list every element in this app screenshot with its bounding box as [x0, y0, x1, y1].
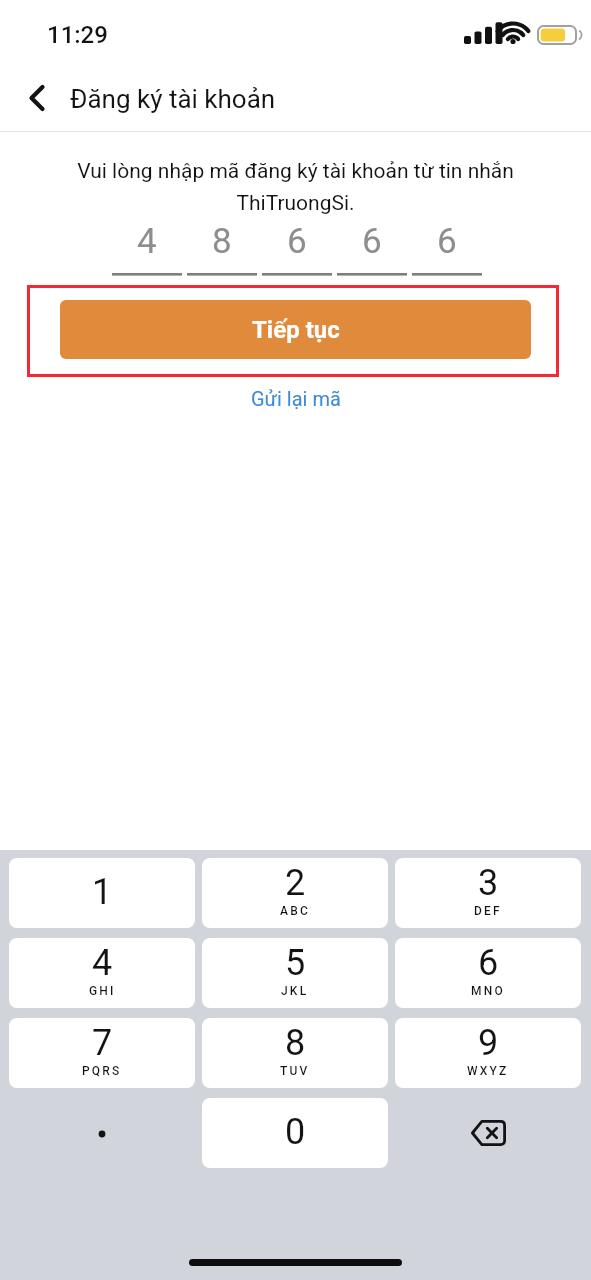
- staticText: 8: [212, 221, 232, 262]
- staticText: MNO: [471, 984, 505, 998]
- staticText: 7: [92, 1022, 113, 1064]
- staticText: 0: [285, 1111, 306, 1153]
- staticText: DEF: [474, 904, 502, 918]
- button[interactable]: 5: [202, 938, 388, 1008]
- staticText: Vui lòng nhập mã đăng ký tài khoản từ ti…: [40, 159, 551, 215]
- staticText: 3: [478, 862, 499, 904]
- button[interactable]: 6: [395, 938, 581, 1008]
- button[interactable]: 3: [395, 858, 581, 928]
- button[interactable]: 7: [9, 1018, 195, 1088]
- staticText: JKL: [281, 984, 309, 998]
- staticText: 1: [92, 871, 113, 913]
- staticText: PQRS: [82, 1064, 122, 1078]
- staticText: 5: [285, 942, 306, 984]
- button[interactable]: 1: [9, 858, 195, 928]
- button[interactable]: 2: [202, 858, 388, 928]
- button[interactable]: 8: [202, 1018, 388, 1088]
- staticText: 4: [137, 221, 157, 262]
- staticText: Đăng ký tài khoản: [70, 84, 276, 114]
- staticText: 6: [287, 221, 307, 262]
- staticText: 11:29: [47, 21, 108, 49]
- button[interactable]: Back: [14, 75, 60, 121]
- staticText: 8: [285, 1022, 306, 1064]
- staticText: 6: [437, 221, 457, 262]
- staticText: Tiếp tục: [252, 316, 340, 344]
- button[interactable]: Tiếp tục: [60, 300, 531, 359]
- staticText: WXYZ: [467, 1064, 509, 1078]
- staticText: GHI: [89, 984, 116, 998]
- staticText: 6: [362, 221, 382, 262]
- button[interactable]: Decimal point: [9, 1098, 195, 1168]
- staticText: 2: [285, 862, 306, 904]
- button[interactable]: 0: [202, 1098, 388, 1168]
- staticText: 6: [478, 942, 499, 984]
- staticText: ABC: [280, 904, 310, 918]
- button[interactable]: Backspace: [395, 1098, 581, 1168]
- button[interactable]: 4: [9, 938, 195, 1008]
- staticText: Gửi lại mã: [251, 387, 341, 410]
- button[interactable]: 9: [395, 1018, 581, 1088]
- staticText: 9: [478, 1022, 499, 1064]
- staticText: 4: [92, 942, 113, 984]
- staticText: TUV: [280, 1064, 310, 1078]
- button[interactable]: Gửi lại mã: [243, 384, 349, 413]
